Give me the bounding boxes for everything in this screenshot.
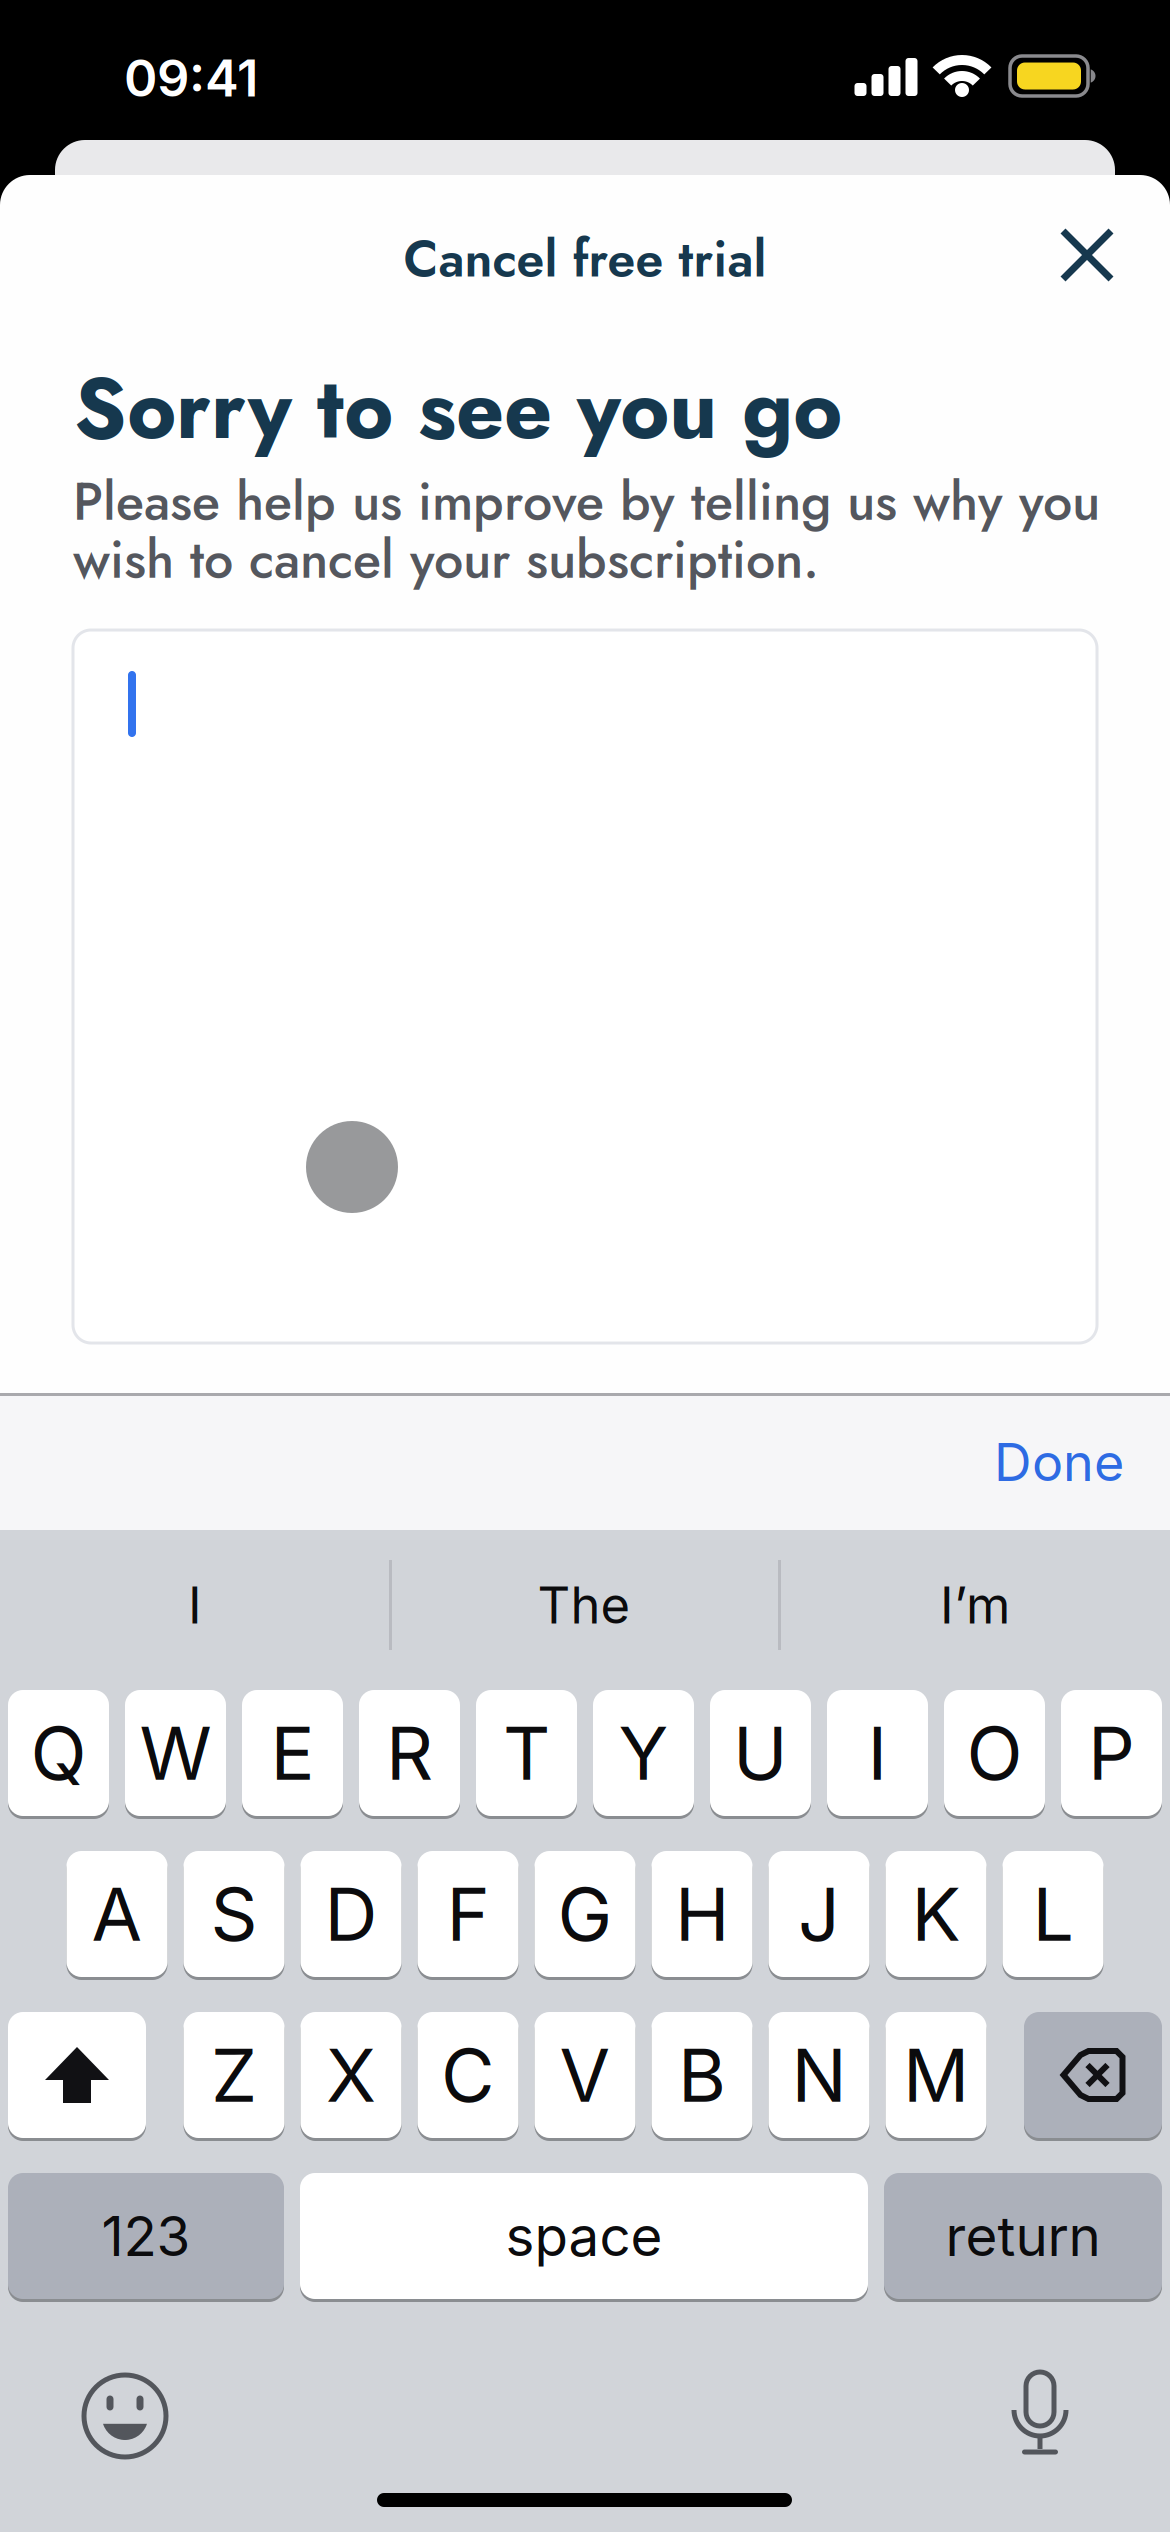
- staticText: M: [903, 2031, 969, 2119]
- button[interactable]: Z: [183, 2012, 284, 2138]
- button[interactable]: The: [394, 1545, 774, 1665]
- staticText: Please help us improve by telling us why…: [73, 464, 1100, 539]
- staticText: Y: [618, 1709, 668, 1797]
- staticText: I: [867, 1709, 887, 1797]
- staticText: 123: [101, 2203, 190, 2269]
- button[interactable]: [8, 2012, 146, 2138]
- button[interactable]: E: [242, 1690, 343, 1816]
- button[interactable]: X: [300, 2012, 401, 2138]
- staticText: A: [91, 1870, 142, 1958]
- staticText: S: [210, 1870, 257, 1958]
- staticText: C: [441, 2031, 495, 2119]
- button[interactable]: U: [710, 1690, 811, 1816]
- staticText: K: [911, 1870, 960, 1958]
- button[interactable]: R: [359, 1690, 460, 1816]
- button[interactable]: S: [183, 1851, 284, 1977]
- staticText: Z: [211, 2031, 257, 2119]
- button[interactable]: [1024, 2012, 1162, 2138]
- staticText: return: [945, 2203, 1100, 2269]
- button[interactable]: G: [534, 1851, 635, 1977]
- staticText: T: [503, 1709, 550, 1797]
- staticText: L: [1032, 1870, 1073, 1958]
- staticText: Cancel free trial: [403, 223, 766, 295]
- staticText: B: [678, 2031, 726, 2119]
- button[interactable]: V: [534, 2012, 635, 2138]
- staticText: P: [1088, 1709, 1135, 1797]
- button[interactable]: return: [884, 2173, 1162, 2299]
- staticText: G: [557, 1870, 612, 1958]
- button[interactable]: A: [66, 1851, 167, 1977]
- button[interactable]: F: [417, 1851, 518, 1977]
- button[interactable]: L: [1002, 1851, 1103, 1977]
- staticText: 09:41: [124, 47, 258, 109]
- button[interactable]: K: [885, 1851, 986, 1977]
- button[interactable]: B: [651, 2012, 752, 2138]
- button[interactable]: I: [827, 1690, 928, 1816]
- staticText: N: [791, 2031, 846, 2119]
- button[interactable]: M: [885, 2012, 986, 2138]
- staticText: O: [966, 1709, 1022, 1797]
- button[interactable]: J: [768, 1851, 869, 1977]
- button[interactable]: P: [1061, 1690, 1162, 1816]
- button[interactable]: [1008, 2366, 1072, 2466]
- staticText: E: [270, 1709, 314, 1797]
- staticText: R: [386, 1709, 433, 1797]
- button[interactable]: [1043, 211, 1131, 299]
- button[interactable]: N: [768, 2012, 869, 2138]
- staticText: wish to cancel your subscription.: [73, 522, 819, 597]
- staticText: space: [505, 2203, 662, 2269]
- staticText: U: [733, 1709, 788, 1797]
- staticText: F: [446, 1870, 489, 1958]
- staticText: Done: [994, 1430, 1124, 1493]
- button[interactable]: W: [125, 1690, 226, 1816]
- staticText: V: [559, 2031, 610, 2119]
- button[interactable]: Done: [970, 1430, 1148, 1493]
- button[interactable]: 123: [8, 2173, 284, 2299]
- staticText: X: [326, 2031, 376, 2119]
- button[interactable]: [83, 2374, 167, 2458]
- staticText: I: [188, 1574, 202, 1636]
- staticText: W: [139, 1709, 211, 1797]
- staticText: I’m: [940, 1574, 1010, 1636]
- staticText: The: [537, 1574, 630, 1636]
- staticText: H: [675, 1870, 729, 1958]
- button[interactable]: Q: [8, 1690, 109, 1816]
- button[interactable]: O: [944, 1690, 1045, 1816]
- staticText: Sorry to see you go: [74, 348, 842, 469]
- button[interactable]: H: [651, 1851, 752, 1977]
- staticText: Q: [30, 1709, 86, 1797]
- button[interactable]: D: [300, 1851, 401, 1977]
- button[interactable]: I: [5, 1545, 385, 1665]
- staticText: J: [798, 1870, 840, 1958]
- button[interactable]: [73, 630, 1097, 1343]
- button[interactable]: C: [417, 2012, 518, 2138]
- button[interactable]: Y: [593, 1690, 694, 1816]
- button[interactable]: space: [300, 2173, 868, 2299]
- button[interactable]: I’m: [785, 1545, 1165, 1665]
- button[interactable]: T: [476, 1690, 577, 1816]
- staticText: D: [324, 1870, 377, 1958]
